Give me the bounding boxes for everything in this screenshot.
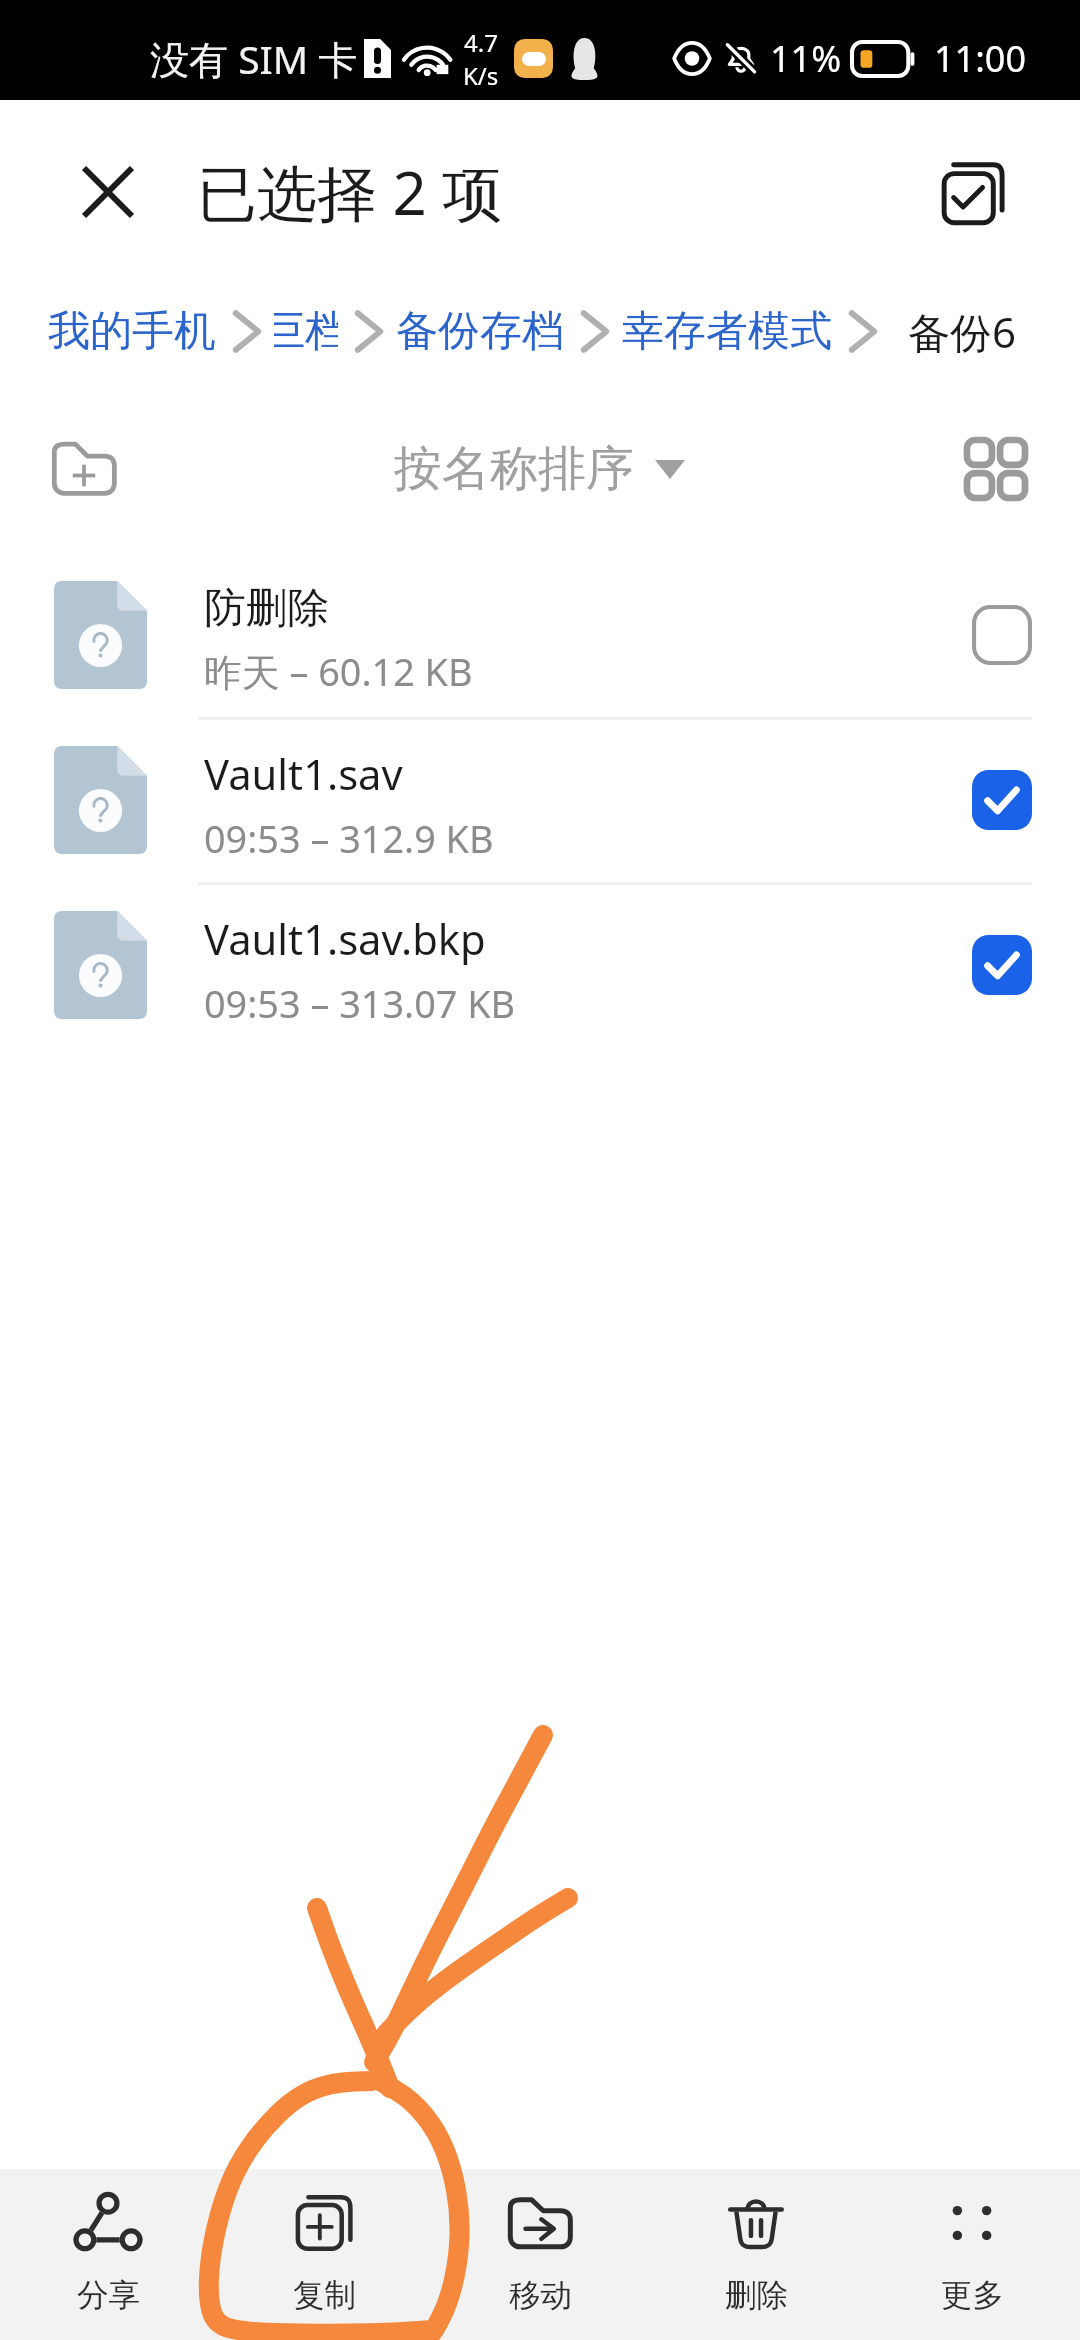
button[interactable]: 删除 <box>648 2169 864 2340</box>
button[interactable]: 幸存者模式 <box>622 305 832 358</box>
staticText: 巨档 <box>274 305 338 358</box>
staticText: 移动 <box>509 2276 572 2316</box>
button[interactable]: Selected <box>936 734 1068 866</box>
button[interactable]: Grid view <box>930 403 1062 535</box>
button[interactable]: 分享 <box>0 2169 216 2340</box>
button[interactable]: Close <box>42 126 174 258</box>
staticText: 没有 SIM 卡 <box>150 32 358 85</box>
staticText: 删除 <box>725 2276 788 2316</box>
button[interactable]: Vault1.sav <box>0 717 1080 882</box>
button[interactable]: 巨档 <box>274 298 338 364</box>
button[interactable]: 备份存档 <box>396 305 564 358</box>
button[interactable]: New folder <box>18 403 150 535</box>
staticText: 分享 <box>77 2276 140 2316</box>
staticText: 备份存档 <box>396 305 564 358</box>
staticText: Vault1.sav <box>204 745 403 802</box>
staticText: Vault1.sav.bkp <box>204 910 486 967</box>
button[interactable]: 我的手机 <box>48 305 216 358</box>
staticText: 幸存者模式 <box>622 305 832 358</box>
staticText: 09:53 – 313.07 KB <box>204 978 516 1029</box>
staticText: 按名称排序 <box>394 439 634 499</box>
staticText: 我的手机 <box>48 305 216 358</box>
staticText: 更多 <box>941 2276 1004 2316</box>
button[interactable]: Vault1.sav.bkp <box>0 882 1080 1047</box>
staticText: 复制 <box>293 2276 356 2316</box>
staticText: 昨天 – 60.12 KB <box>204 646 473 698</box>
staticText: 09:53 – 312.9 KB <box>204 813 494 864</box>
staticText: 已选择 2 项 <box>197 151 503 233</box>
staticText: 备份6 <box>908 303 1017 360</box>
button[interactable]: 移动 <box>432 2169 648 2340</box>
button[interactable]: Select all <box>906 126 1038 258</box>
button[interactable]: 防删除 <box>0 552 1080 717</box>
button[interactable]: Selected <box>936 899 1068 1031</box>
staticText: 4.7 <box>464 26 498 59</box>
staticText: 防删除 <box>204 582 330 635</box>
button[interactable]: Not selected <box>936 569 1068 701</box>
button[interactable]: 按名称排序 <box>376 424 703 514</box>
staticText: K/s <box>463 59 499 92</box>
button[interactable]: 更多 <box>864 2169 1080 2340</box>
button[interactable]: 复制 <box>216 2169 432 2340</box>
staticText: 11% <box>770 34 842 83</box>
staticText: 11:00 <box>934 34 1027 83</box>
